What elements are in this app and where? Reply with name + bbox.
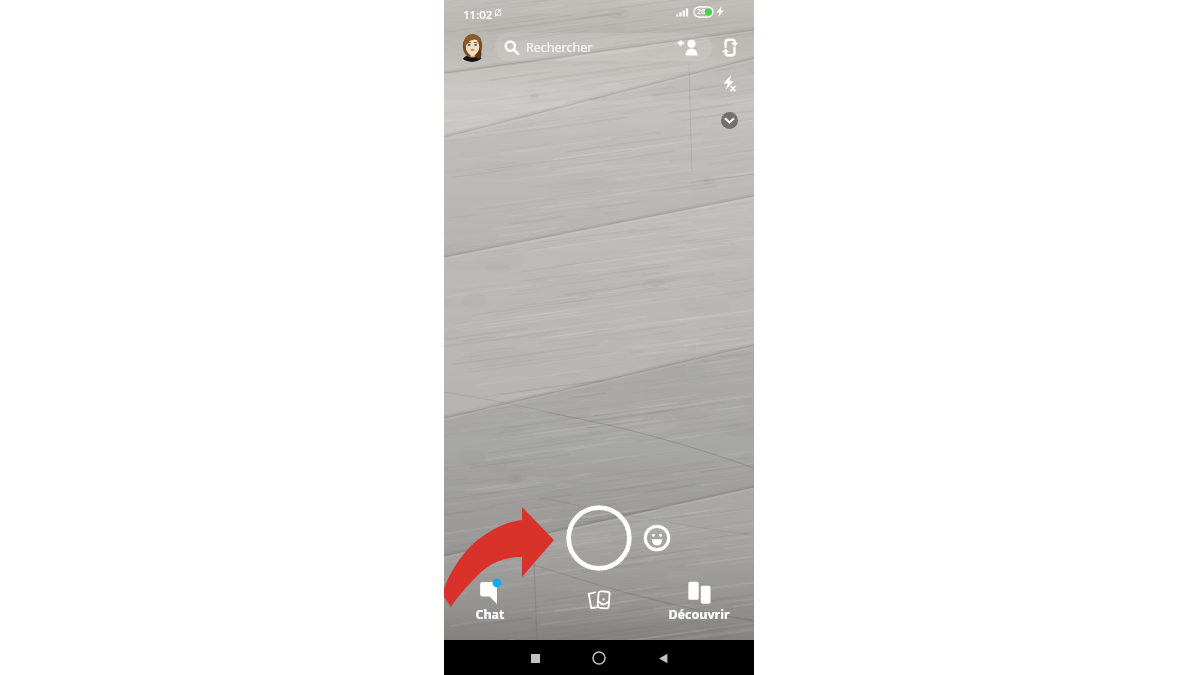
- button[interactable]: Home: [587, 646, 611, 670]
- button[interactable]: Découvrir: [666, 579, 732, 627]
- button[interactable]: Capture: [566, 505, 632, 571]
- button[interactable]: Back: [651, 646, 675, 670]
- button[interactable]: Chat: [454, 579, 526, 627]
- button[interactable]: Flip camera: [718, 35, 742, 59]
- button[interactable]: More options: [721, 112, 738, 129]
- button[interactable]: Rechercher: [495, 33, 712, 61]
- staticText: 28: [697, 7, 706, 17]
- staticText: 11:02: [463, 7, 493, 23]
- staticText: Découvrir: [668, 606, 730, 623]
- staticText: Chat: [475, 606, 505, 623]
- button[interactable]: Profile: [457, 32, 487, 62]
- button[interactable]: Stories: [570, 584, 630, 624]
- staticText: Rechercher: [526, 39, 593, 56]
- button[interactable]: Recents: [523, 646, 547, 670]
- button[interactable]: Lenses: [643, 524, 671, 552]
- button[interactable]: Flash off: [718, 72, 740, 94]
- button[interactable]: Add friend: [675, 34, 701, 60]
